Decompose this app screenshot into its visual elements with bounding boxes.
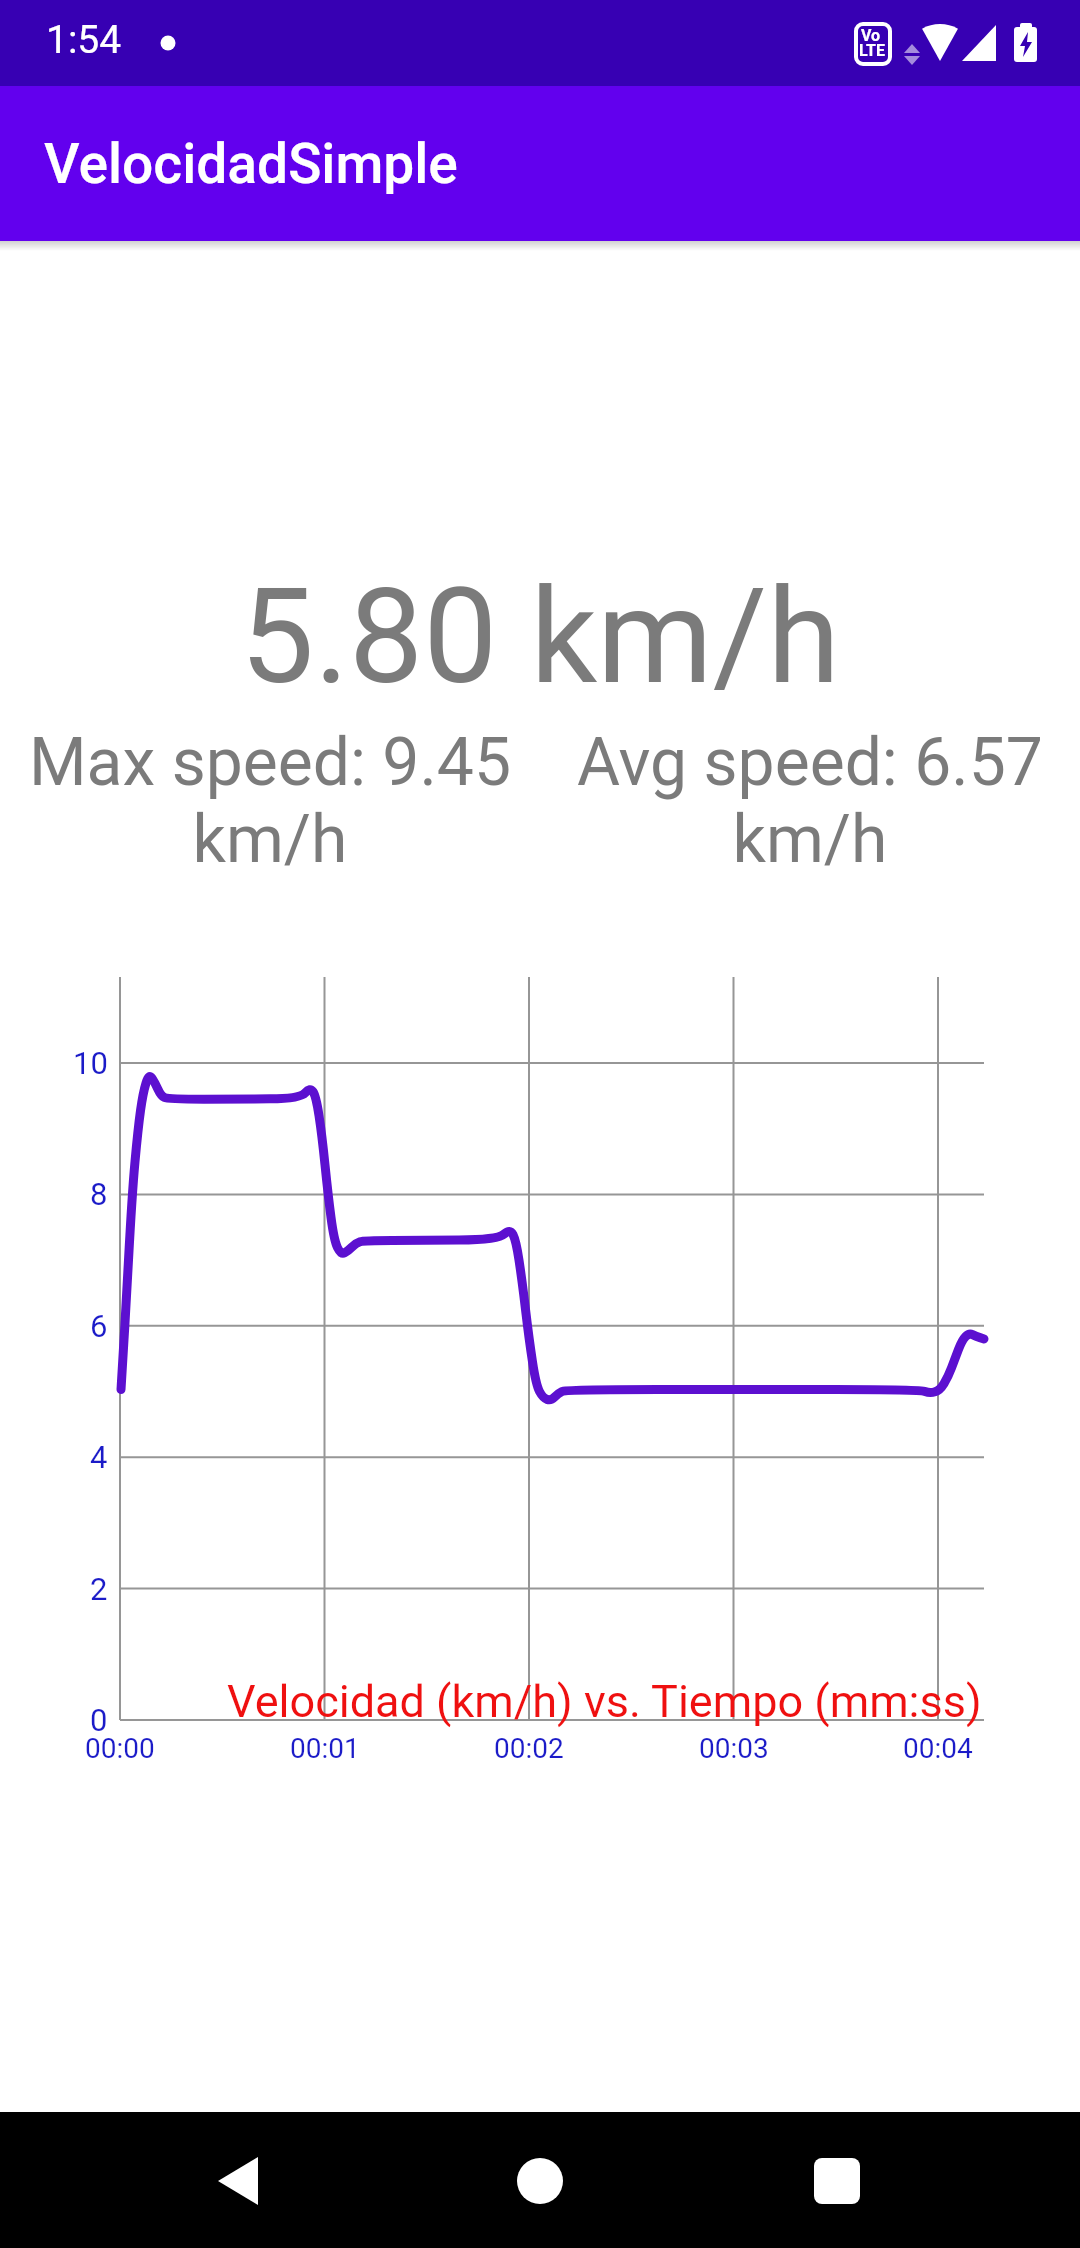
staticText: VelocidadSimple bbox=[44, 132, 458, 196]
staticText: 5.80 km/h bbox=[0, 560, 1080, 715]
staticText: 10 bbox=[73, 1045, 108, 1081]
staticText: 1:54 bbox=[46, 17, 122, 63]
staticText: LTE bbox=[859, 41, 885, 60]
staticText: 2 bbox=[90, 1571, 108, 1607]
staticText: Velocidad (km/h) vs. Tiempo (mm:ss) bbox=[227, 1675, 982, 1728]
staticText: 00:01 bbox=[290, 1732, 360, 1765]
staticText: 0 bbox=[90, 1702, 108, 1738]
staticText: 00:03 bbox=[699, 1732, 769, 1765]
staticText: 8 bbox=[90, 1176, 108, 1212]
staticText: 00:00 bbox=[85, 1732, 155, 1765]
button[interactable] bbox=[190, 2130, 290, 2230]
staticText: Avg speed: 6.57 km/h bbox=[540, 724, 1080, 878]
staticText: 6 bbox=[90, 1308, 108, 1344]
staticText: 00:02 bbox=[494, 1732, 564, 1765]
button[interactable] bbox=[490, 2130, 590, 2230]
staticText: Vo bbox=[861, 26, 881, 45]
staticText: 00:04 bbox=[903, 1732, 973, 1765]
staticText: Max speed: 9.45 km/h bbox=[0, 724, 540, 878]
staticText: 4 bbox=[90, 1439, 108, 1475]
button[interactable] bbox=[788, 2130, 888, 2230]
